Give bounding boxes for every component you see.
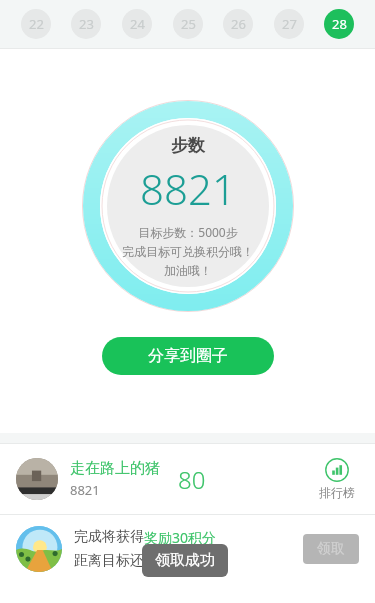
button[interactable]: 走在路上的猪 — [0, 444, 375, 514]
staticText: 24 — [130, 15, 145, 33]
staticText: 28 — [332, 15, 347, 33]
staticText: 排行榜 — [319, 485, 355, 500]
staticText: 27 — [282, 15, 297, 33]
button[interactable]: 22 — [21, 9, 51, 39]
staticText: 目标步数：5000步 — [138, 224, 238, 240]
staticText: 80 — [178, 463, 206, 496]
staticText: 8821 — [70, 481, 100, 499]
staticText: 8821 — [140, 160, 236, 217]
button[interactable]: 领取 — [303, 534, 359, 564]
button[interactable]: 25 — [173, 9, 203, 39]
staticText: 领取 — [317, 540, 345, 558]
staticText: 26 — [231, 15, 246, 33]
button[interactable]: 28 — [324, 9, 354, 39]
staticText: 奖励30积分 — [144, 528, 217, 547]
button[interactable]: 分享到圈子 — [102, 337, 274, 375]
staticText: 完成目标可兑换积分哦！ — [122, 244, 254, 259]
staticText: 走在路上的猪 — [70, 459, 160, 478]
staticText: 领取成功 — [155, 551, 215, 570]
button[interactable]: 24 — [122, 9, 152, 39]
staticText: 完成将获得 — [74, 528, 144, 546]
button[interactable]: 23 — [71, 9, 101, 39]
staticText: 0 — [158, 552, 167, 571]
staticText: 距离目标还有 — [74, 552, 158, 570]
staticText: 加油哦！ — [164, 263, 212, 278]
button[interactable]: 排行榜 — [315, 454, 359, 504]
staticText: 25 — [181, 15, 196, 33]
staticText: 23 — [79, 15, 94, 33]
staticText: 分享到圈子 — [148, 346, 228, 366]
staticText: 步数 — [171, 135, 205, 156]
staticText: 22 — [29, 15, 44, 33]
button[interactable]: 27 — [274, 9, 304, 39]
button[interactable]: 26 — [223, 9, 253, 39]
